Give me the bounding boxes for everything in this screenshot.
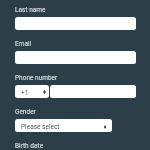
- button[interactable]: Email: [15, 51, 136, 64]
- button[interactable]: Last name: [15, 17, 136, 30]
- staticText: Last name: [15, 6, 46, 14]
- button[interactable]: Phone number: [50, 85, 136, 98]
- staticText: Gender: [15, 108, 36, 116]
- staticText: Email: [15, 40, 32, 48]
- staticText: Please select: [21, 123, 60, 131]
- button[interactable]: Gender: [15, 119, 112, 132]
- staticText: Birth date: [15, 142, 44, 150]
- staticText: Phone number: [15, 74, 58, 82]
- button[interactable]: Country code: [15, 85, 49, 98]
- staticText: +1: [21, 89, 29, 97]
